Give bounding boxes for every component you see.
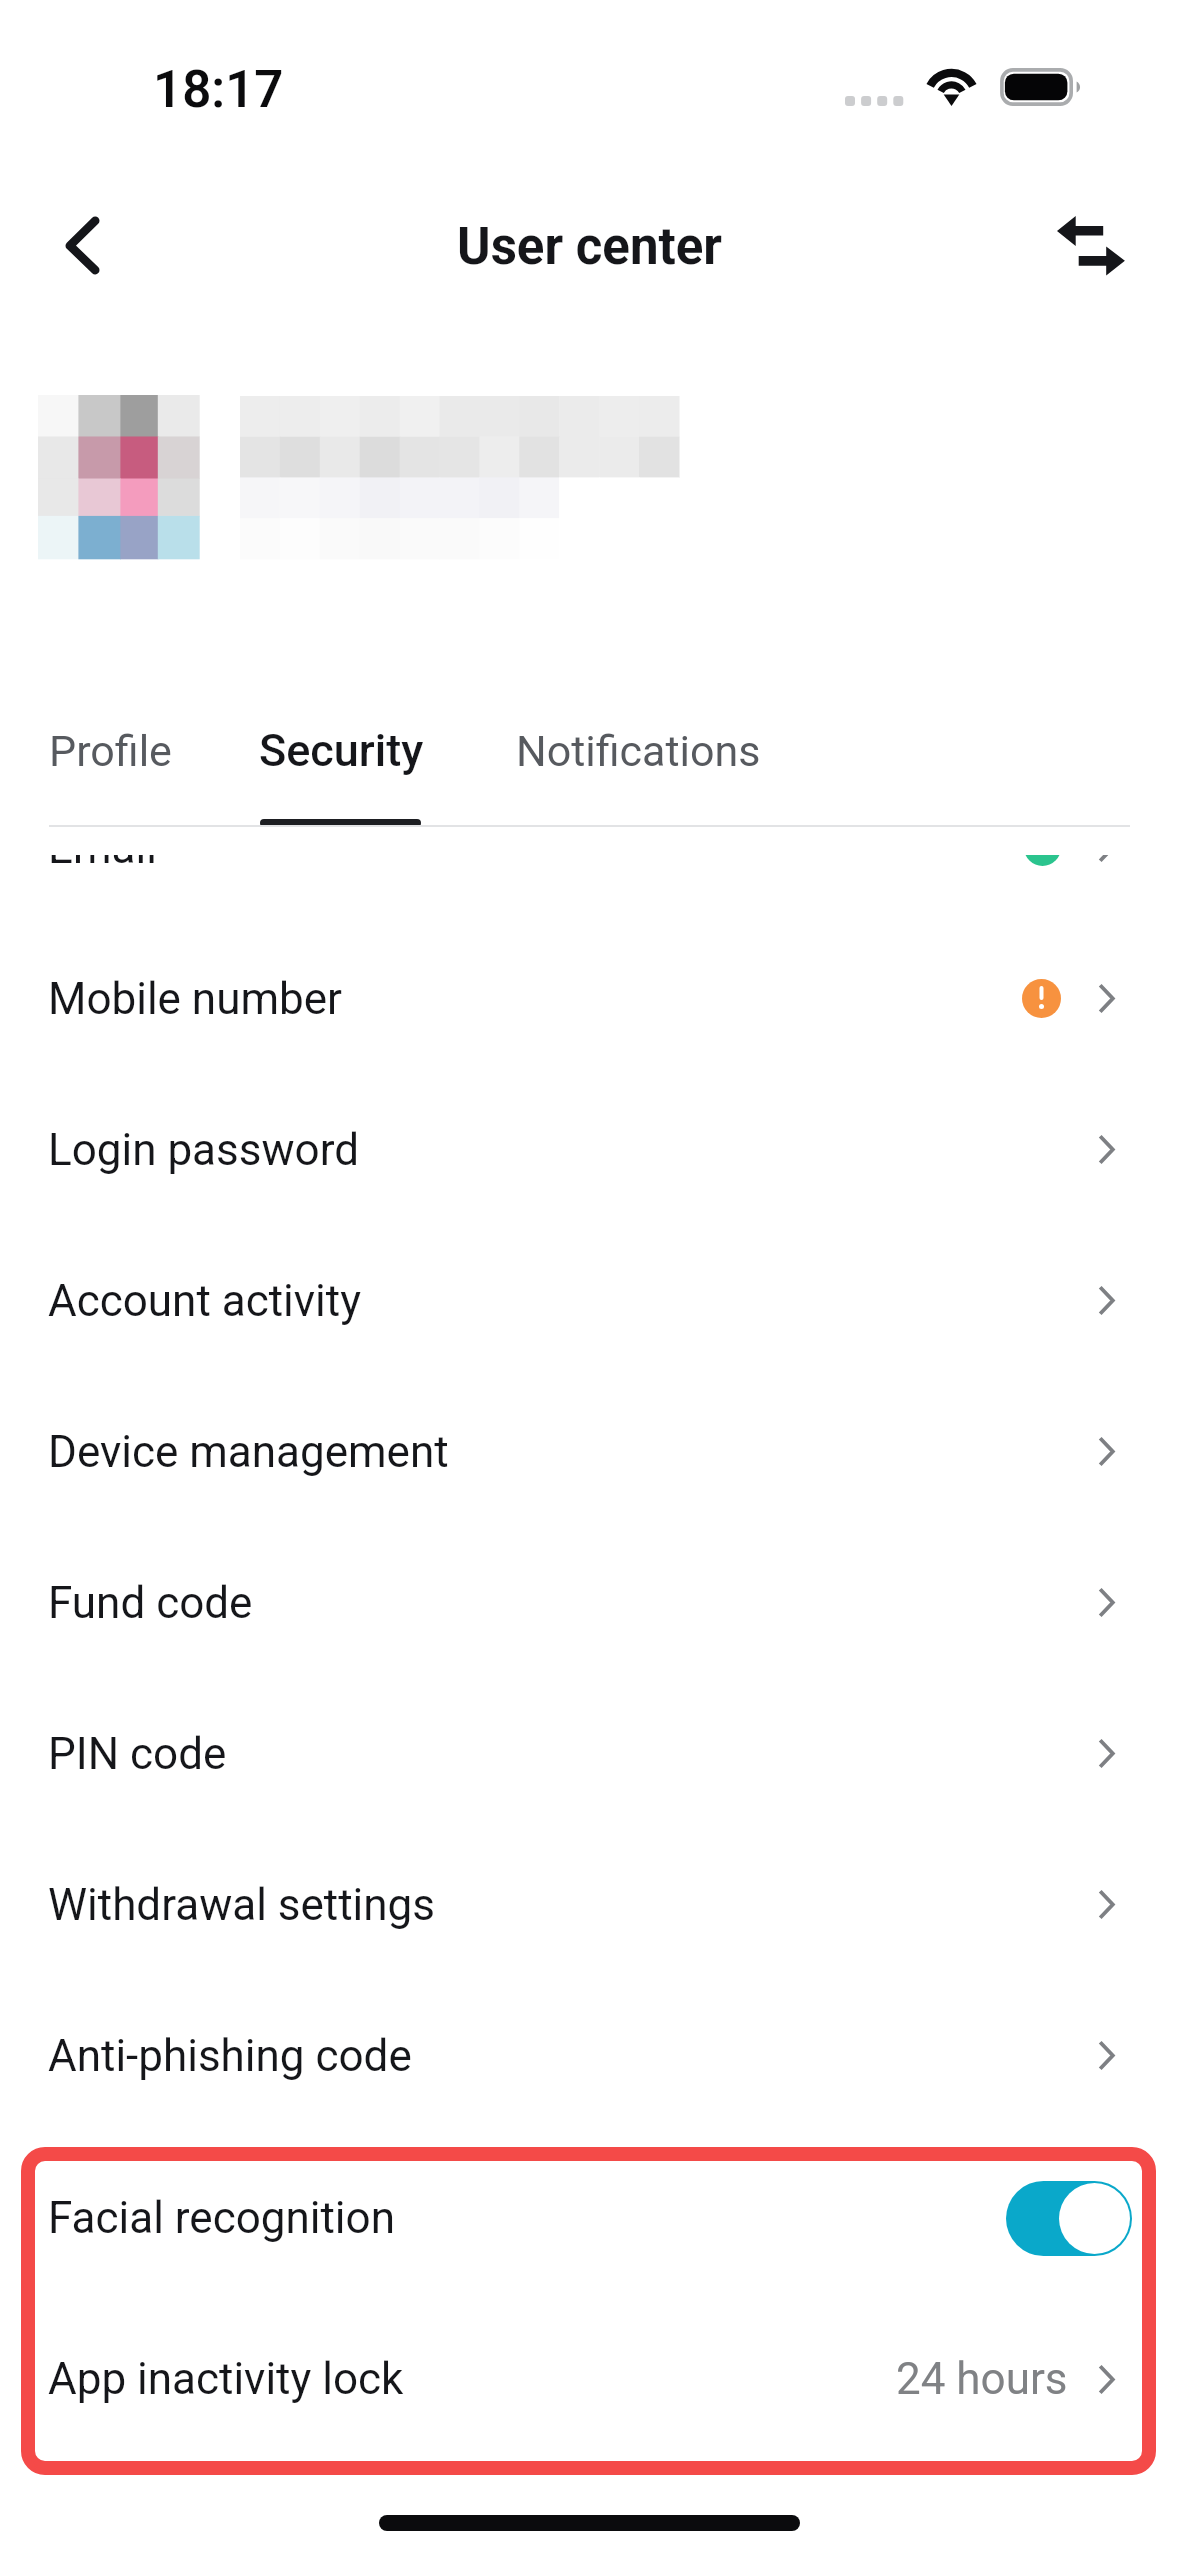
staticText: Device management — [48, 1426, 449, 1478]
staticText: PIN code — [48, 1728, 227, 1780]
staticText: App inactivity lock — [48, 2353, 404, 2405]
button[interactable]: Device management — [0, 1376, 1179, 1527]
staticText: Mobile number — [48, 973, 342, 1025]
button[interactable]: Mobile number — [0, 923, 1179, 1074]
staticText: Withdrawal settings — [48, 1879, 436, 1931]
staticText: Login password — [48, 1124, 359, 1176]
staticText: 18:17 — [153, 60, 284, 120]
button[interactable]: Anti-phishing code — [0, 1980, 1179, 2131]
staticText: Profile — [49, 726, 172, 776]
button[interactable]: Facial recognition — [0, 2137, 1179, 2299]
button[interactable]: Fund code — [0, 1527, 1179, 1678]
button[interactable]: Back — [20, 185, 130, 305]
button[interactable]: App inactivity lock — [0, 2298, 1179, 2460]
button[interactable]: Email — [0, 855, 1179, 923]
staticText: Fund code — [48, 1577, 253, 1629]
staticText: 24 hours — [896, 2353, 1068, 2405]
staticText: Anti-phishing code — [48, 2030, 412, 2082]
staticText: Notifications — [516, 726, 761, 776]
button[interactable]: PIN code — [0, 1678, 1179, 1829]
button[interactable]: Facial recognition toggle — [1006, 2181, 1132, 2256]
button[interactable]: Security — [235, 700, 448, 827]
staticText: Facial recognition — [48, 2192, 395, 2244]
button[interactable]: Withdrawal settings — [0, 1829, 1179, 1980]
button[interactable]: Notifications — [492, 700, 785, 827]
staticText: User center — [457, 217, 722, 277]
button[interactable]: Switch account — [1030, 190, 1150, 302]
staticText: Account activity — [48, 1275, 362, 1327]
staticText: Email — [48, 855, 157, 874]
button[interactable]: Account activity — [0, 1225, 1179, 1376]
staticText: Security — [259, 724, 424, 777]
button[interactable]: Profile — [25, 700, 196, 827]
button[interactable]: Login password — [0, 1074, 1179, 1225]
